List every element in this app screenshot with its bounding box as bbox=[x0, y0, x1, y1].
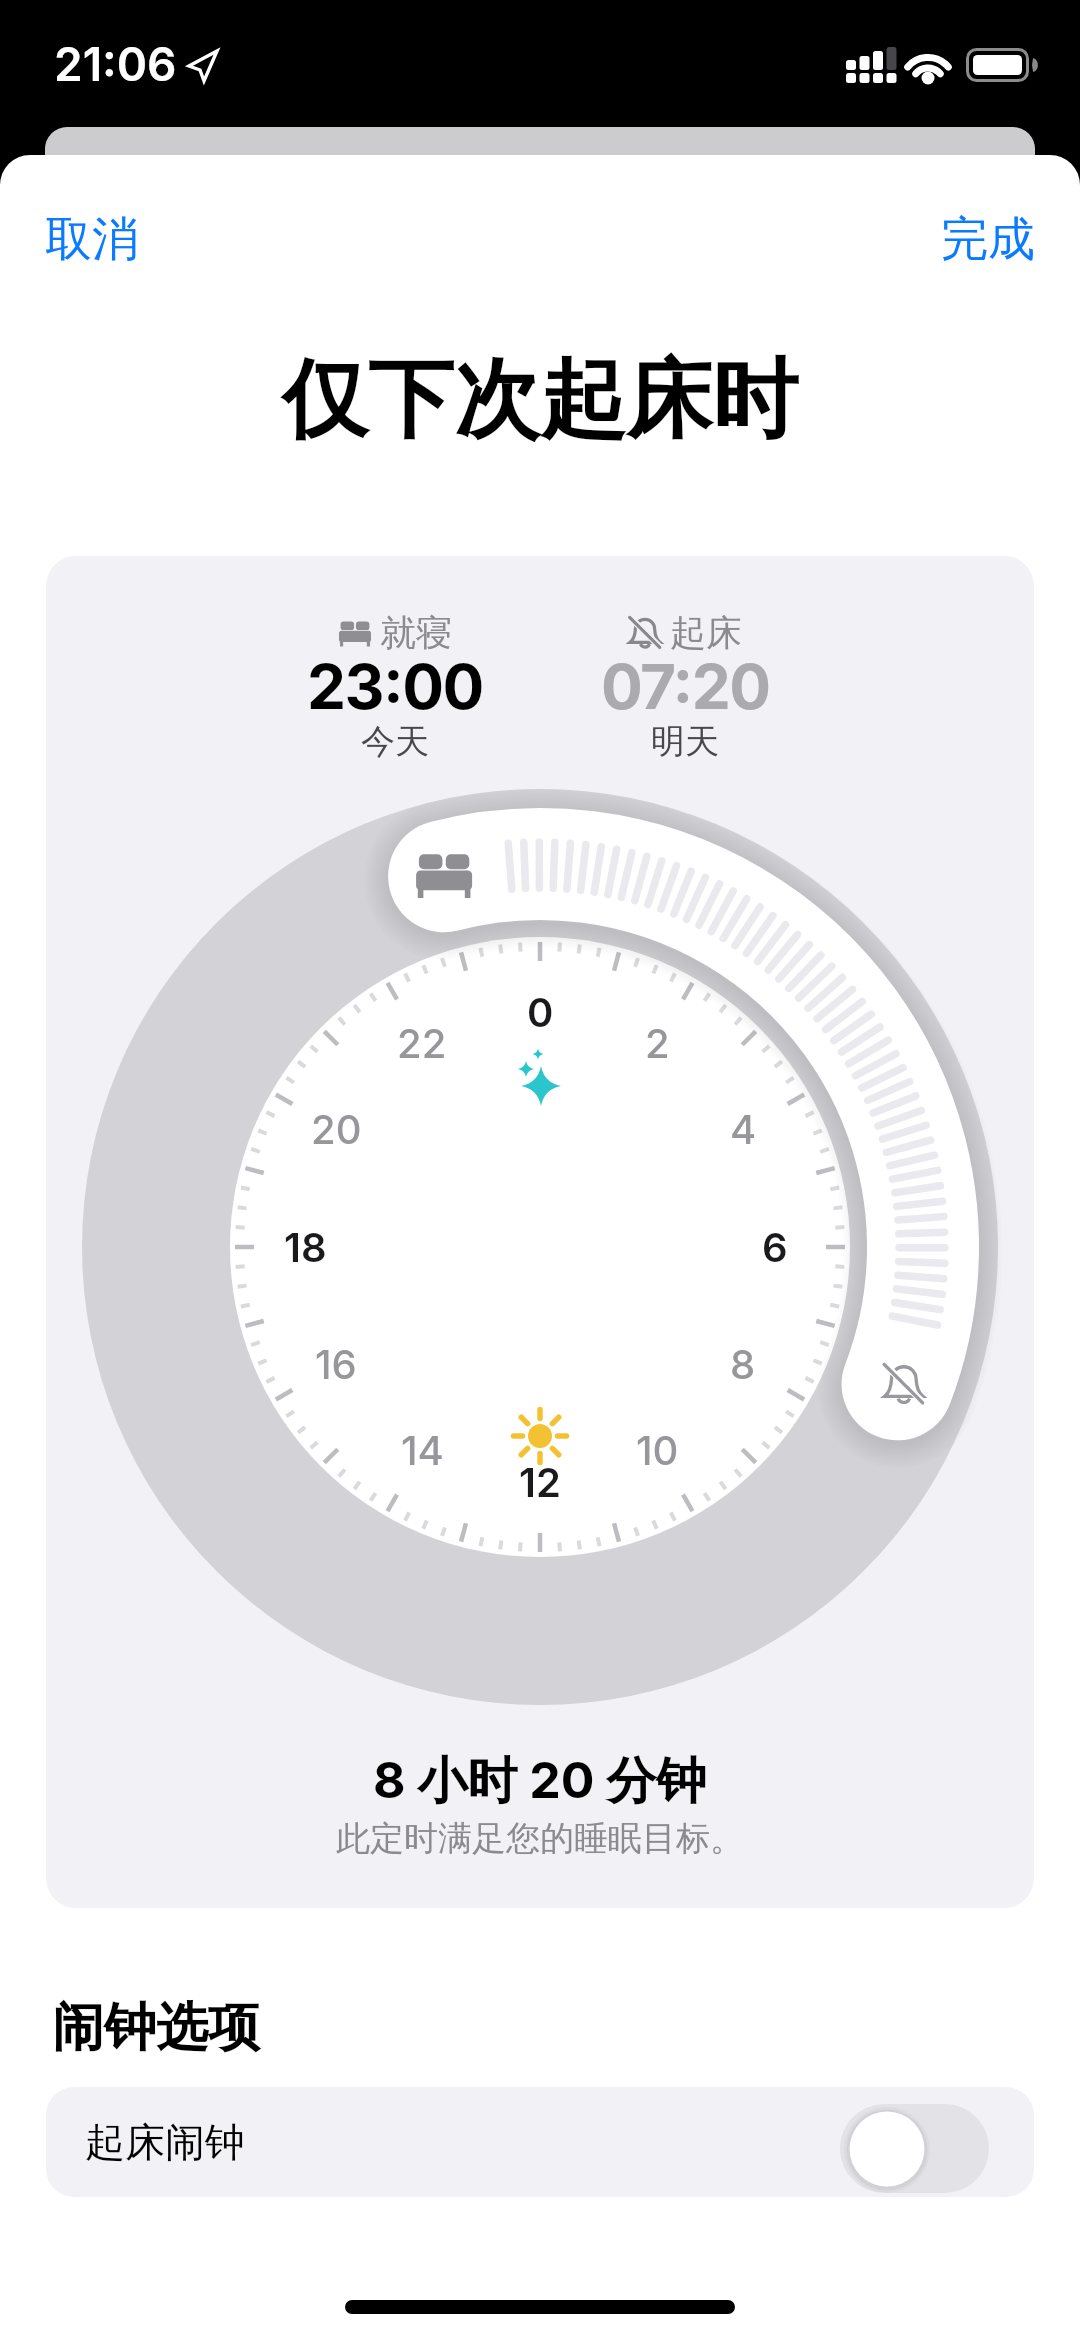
staticText: 14 bbox=[401, 1426, 444, 1474]
button[interactable]: 取消 bbox=[45, 207, 215, 271]
staticText: 完成 bbox=[941, 210, 1035, 269]
staticText: 4 bbox=[730, 1105, 757, 1153]
staticText: 23:00 bbox=[307, 649, 483, 724]
staticText: 闹钟选项 bbox=[52, 1995, 260, 2061]
staticText: 10 bbox=[636, 1426, 679, 1474]
staticText: 0 bbox=[527, 988, 554, 1036]
staticText: 起床 bbox=[670, 610, 742, 655]
staticText: 8 bbox=[730, 1340, 756, 1388]
staticText: 07:20 bbox=[601, 649, 770, 724]
staticText: 今天 bbox=[361, 720, 429, 763]
staticText: 8 小时 20 分钟 bbox=[373, 1750, 707, 1813]
button[interactable] bbox=[840, 2104, 989, 2193]
button[interactable]: 起床闹钟 bbox=[46, 2087, 1034, 2197]
staticText: 12 bbox=[519, 1458, 561, 1506]
staticText: 2 bbox=[645, 1019, 670, 1067]
staticText: 18 bbox=[284, 1223, 327, 1271]
staticText: 22 bbox=[397, 1019, 447, 1067]
staticText: 就寝 bbox=[380, 610, 452, 655]
staticText: 20 bbox=[311, 1105, 362, 1153]
staticText: 仅下次起床时 bbox=[282, 346, 798, 454]
staticText: 6 bbox=[762, 1223, 788, 1271]
staticText: 16 bbox=[315, 1340, 357, 1388]
staticText: 取消 bbox=[45, 210, 139, 269]
staticText: 起床闹钟 bbox=[85, 2117, 245, 2167]
staticText: 21:06 bbox=[54, 36, 177, 92]
staticText: 明天 bbox=[651, 720, 719, 763]
button[interactable]: 完成 bbox=[865, 207, 1035, 271]
staticText: 此定时满足您的睡眠目标。 bbox=[336, 1817, 744, 1860]
